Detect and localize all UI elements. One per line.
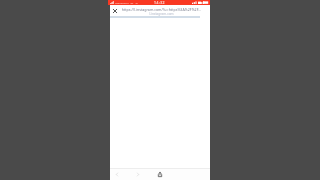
staticText: l.instagram.com — [118, 12, 205, 16]
button[interactable]: Share — [151, 169, 169, 180]
staticText: Vodafone IN 4G .ıll — [115, 1, 138, 4]
button[interactable]: Back — [108, 169, 126, 180]
staticText: 14:32 — [154, 0, 165, 5]
staticText: https://l.instagram.com/?u=https%3A%2F%2… — [118, 7, 205, 12]
button[interactable]: Close — [110, 6, 120, 16]
